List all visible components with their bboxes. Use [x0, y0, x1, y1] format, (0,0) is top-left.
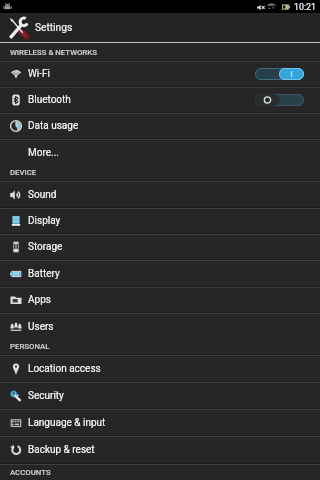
button[interactable]: Apps: [0, 288, 320, 312]
button[interactable]: Switch on: [255, 68, 304, 80]
button[interactable]: Switch off: [255, 94, 304, 106]
staticText: Users: [28, 321, 54, 333]
button[interactable]: More...: [0, 140, 320, 166]
staticText: Bluetooth: [28, 94, 71, 106]
staticText: More...: [28, 147, 59, 159]
staticText: ACCOUNTS: [10, 468, 51, 477]
button[interactable]: Language & input: [0, 410, 320, 435]
button[interactable]: Security: [0, 383, 320, 408]
button[interactable]: Backup & reset: [0, 437, 320, 463]
button[interactable]: Location access: [0, 356, 320, 381]
button[interactable]: Settings: [0, 13, 320, 42]
staticText: Sound: [28, 189, 57, 201]
staticText: Language & input: [28, 417, 106, 429]
staticText: PERSONAL: [10, 342, 50, 351]
button[interactable]: Sound: [0, 182, 320, 207]
staticText: Data usage: [28, 120, 79, 132]
staticText: Location access: [28, 363, 101, 375]
staticText: Storage: [28, 241, 63, 253]
staticText: Apps: [28, 294, 51, 306]
button[interactable]: Data usage: [0, 114, 320, 138]
staticText: Battery: [28, 268, 60, 280]
staticText: Display: [28, 215, 61, 227]
button[interactable]: Battery: [0, 261, 320, 286]
button[interactable]: Bluetooth: [0, 88, 320, 112]
staticText: 10:21: [294, 2, 316, 12]
staticText: Backup & reset: [28, 444, 95, 456]
staticText: Settings: [35, 22, 73, 34]
button[interactable]: Wi-Fi: [0, 62, 320, 86]
staticText: Security: [28, 390, 64, 402]
staticText: WIRELESS & NETWORKS: [10, 48, 97, 57]
button[interactable]: Users: [0, 314, 320, 340]
button[interactable]: Storage: [0, 235, 320, 259]
staticText: Wi-Fi: [28, 68, 51, 80]
staticText: DEVICE: [10, 168, 37, 177]
button[interactable]: Display: [0, 209, 320, 233]
